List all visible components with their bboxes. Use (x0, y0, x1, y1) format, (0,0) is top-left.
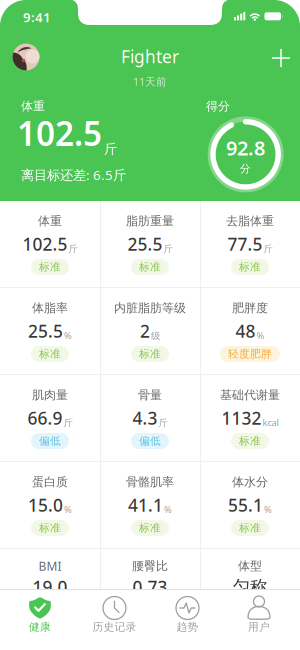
staticText: 斤 (163, 243, 172, 254)
staticText: 15.0 (28, 493, 63, 516)
staticText: 体型 (238, 559, 262, 573)
staticText: 55.1 (228, 493, 263, 516)
button[interactable]: 体重 (0, 201, 100, 288)
staticText: 标准 (39, 260, 61, 273)
button[interactable]: 趋势 (150, 589, 225, 650)
staticText: 离目标还差: 6.5斤 (21, 166, 126, 184)
staticText: 内脏脂肪等级 (114, 301, 186, 315)
staticText: 25.5 (28, 319, 63, 342)
staticText: 斤 (104, 141, 117, 157)
staticText: 斤 (158, 417, 167, 428)
button[interactable]: 腰臀比 (100, 549, 200, 636)
staticText: % (64, 503, 72, 515)
staticText: 体重 (38, 214, 62, 228)
staticText: 肥胖度 (232, 301, 268, 315)
staticText: % (164, 503, 172, 515)
staticText: 11天前 (133, 74, 167, 89)
staticText: % (264, 503, 272, 515)
staticText: 去脂体重 (226, 214, 274, 228)
button[interactable]: 骨量 (100, 375, 200, 462)
button[interactable]: 肌肉量 (0, 375, 100, 462)
staticText: 脂肪重量 (126, 214, 174, 228)
button[interactable]: 基础代谢量 (200, 375, 300, 462)
button[interactable]: 用户 (225, 589, 300, 650)
staticText: 标准 (139, 521, 161, 534)
staticText: 体脂率 (32, 301, 68, 315)
staticText: % (64, 329, 72, 341)
button[interactable]: 历史记录 (75, 589, 150, 650)
staticText: 25.5 (127, 232, 162, 255)
staticText: 9:41 (23, 8, 51, 26)
staticText: 用户 (248, 620, 270, 633)
staticText: 标准 (139, 260, 161, 273)
staticText: 肌肉量 (32, 388, 68, 402)
staticText: 41.1 (128, 493, 163, 516)
button[interactable]: 肥胖度 (200, 288, 300, 375)
button[interactable]: 体脂率 (0, 288, 100, 375)
staticText: 1132 (221, 406, 261, 429)
staticText: kcal (262, 416, 278, 428)
staticText: 轻度肥胖 (228, 347, 272, 360)
staticText: 标准 (239, 260, 261, 273)
staticText: 48 (235, 319, 255, 342)
staticText: 健康 (29, 620, 51, 633)
staticText: 斤 (68, 243, 77, 254)
staticText: 0.73 (132, 575, 167, 598)
staticText: 趋势 (176, 620, 198, 633)
staticText: 腰臀比 (132, 559, 168, 573)
button[interactable]: Add (272, 49, 290, 67)
staticText: % (256, 329, 264, 341)
staticText: 蛋白质 (32, 475, 68, 489)
staticText: 标准 (239, 434, 261, 447)
staticText: 2 (140, 319, 150, 342)
button[interactable]: BMI (0, 549, 100, 636)
staticText: 标准 (39, 521, 61, 534)
staticText: Fighter (121, 45, 179, 68)
button[interactable]: 骨骼肌率 (100, 462, 200, 549)
staticText: 标准 (39, 608, 61, 621)
staticText: 92.8 (226, 134, 265, 161)
staticText: BMI (38, 558, 61, 574)
staticText: 66.9 (27, 406, 62, 429)
button[interactable]: 体水分 (200, 462, 300, 549)
staticText: 标准 (139, 347, 161, 360)
staticText: 骨量 (138, 388, 162, 402)
staticText: 斤 (63, 417, 72, 428)
button[interactable]: 内脏脂肪等级 (100, 288, 200, 375)
staticText: 偏低 (39, 434, 61, 447)
button[interactable]: 脂肪重量 (100, 201, 200, 288)
button[interactable]: 健康 (0, 589, 75, 650)
button[interactable]: 去脂体重 (200, 201, 300, 288)
staticText: 得分 (206, 99, 230, 114)
staticText: 偏低 (139, 434, 161, 447)
staticText: 骨骼肌率 (126, 475, 174, 489)
staticText: 19.0 (32, 575, 67, 598)
button[interactable]: 体型 (200, 549, 300, 636)
staticText: 标准 (239, 521, 261, 534)
staticText: 体重 (21, 99, 45, 114)
staticText: 标准 (239, 608, 261, 621)
staticText: 77.5 (227, 232, 262, 255)
button[interactable]: Profile (12, 43, 39, 70)
staticText: 标准 (39, 347, 61, 360)
staticText: 102.5 (17, 111, 102, 155)
button[interactable]: 蛋白质 (0, 462, 100, 549)
staticText: 102.5 (22, 232, 67, 255)
staticText: 基础代谢量 (220, 388, 280, 402)
staticText: 斤 (263, 243, 272, 254)
staticText: 体水分 (232, 475, 268, 489)
staticText: 历史记录 (92, 620, 136, 633)
staticText: 级 (151, 330, 160, 341)
staticText: 匀称 (233, 576, 267, 598)
staticText: 分 (240, 162, 251, 175)
staticText: 4.3 (132, 406, 157, 429)
